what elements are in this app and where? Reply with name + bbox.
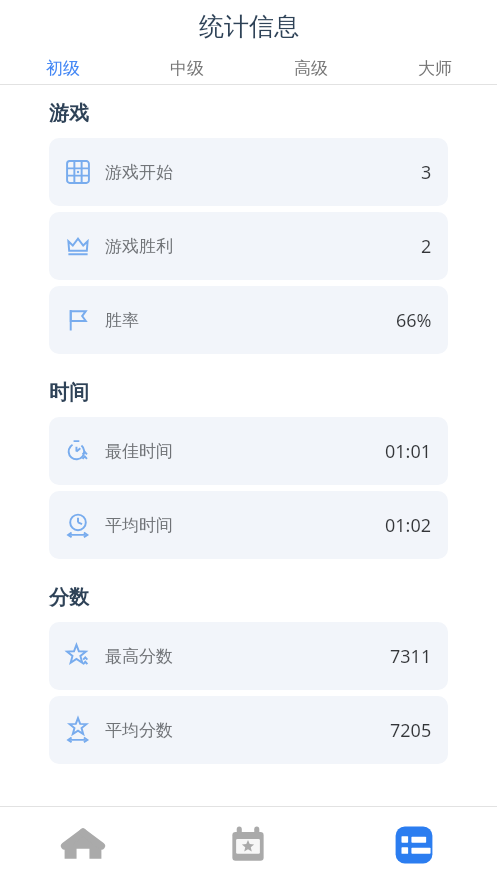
button[interactable]: Daily challenge (165, 807, 331, 883)
staticText: 游戏 (49, 101, 89, 126)
staticText: 平均时间 (105, 515, 173, 536)
button[interactable]: Home (0, 807, 165, 883)
staticText: 66% (396, 308, 432, 333)
staticText: 7311 (390, 644, 432, 669)
staticText: 中级 (170, 58, 204, 79)
staticText: 7205 (390, 718, 432, 743)
staticText: 最佳时间 (105, 441, 173, 462)
button[interactable]: 最高分数 (49, 622, 448, 690)
staticText: 分数 (49, 585, 89, 610)
button[interactable]: 中级 (125, 52, 249, 84)
button[interactable]: Statistics (331, 807, 497, 883)
staticText: 游戏胜利 (105, 236, 173, 257)
button[interactable]: 胜率 (49, 286, 448, 354)
staticText: 3 (421, 160, 432, 185)
staticText: 时间 (49, 380, 89, 405)
button[interactable]: 最佳时间 (49, 417, 448, 485)
staticText: 2 (421, 234, 432, 259)
button[interactable]: 游戏胜利 (49, 212, 448, 280)
button[interactable]: 高级 (249, 52, 373, 84)
staticText: 游戏开始 (105, 162, 173, 183)
staticText: 高级 (294, 58, 328, 79)
button[interactable]: 大师 (373, 52, 497, 84)
staticText: 01:01 (385, 439, 432, 464)
staticText: 最高分数 (105, 646, 173, 667)
staticText: 平均分数 (105, 720, 173, 741)
staticText: 统计信息 (199, 11, 299, 42)
button[interactable]: 初级 (0, 52, 125, 84)
button[interactable]: 平均分数 (49, 696, 448, 764)
button[interactable]: 游戏开始 (49, 138, 448, 206)
staticText: 大师 (418, 58, 452, 79)
staticText: 胜率 (105, 310, 139, 331)
staticText: 初级 (46, 58, 80, 79)
staticText: 01:02 (385, 513, 432, 538)
button[interactable]: 平均时间 (49, 491, 448, 559)
